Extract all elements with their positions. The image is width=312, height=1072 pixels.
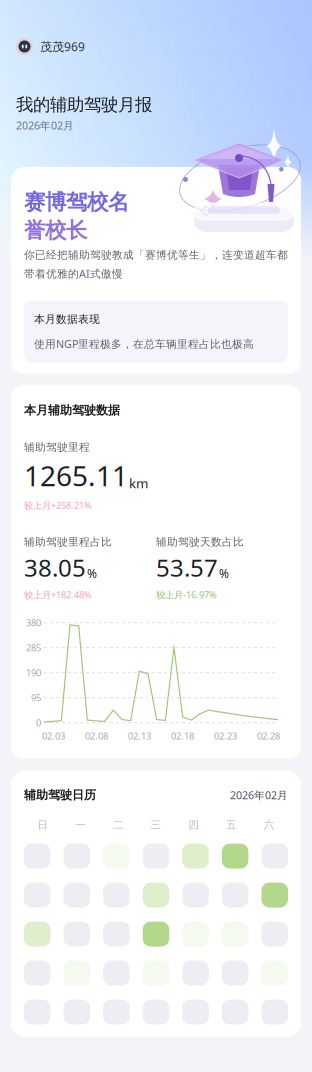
staticText: 02.03	[42, 730, 65, 742]
staticText: 你已经把辅助驾驶教成「赛博优等生」，连变道超车都带着优雅的AI式傲慢	[24, 248, 288, 281]
staticText: 二	[113, 818, 124, 832]
staticText: 辅助驾驶天数占比	[156, 535, 244, 548]
staticText: 三	[150, 818, 161, 832]
staticText: 02.08	[85, 730, 108, 742]
staticText: 本月辅助驾驶数据	[24, 403, 120, 418]
staticText: %	[87, 565, 97, 581]
staticText: 285	[26, 641, 41, 654]
staticText: 02.23	[214, 730, 237, 742]
staticText: 190	[26, 666, 41, 679]
staticText: 辅助驾驶里程	[24, 441, 90, 454]
staticText: 02.18	[171, 730, 194, 742]
staticText: %	[219, 565, 229, 581]
button[interactable]: 茂茂969	[16, 38, 85, 55]
staticText: 53.57	[156, 551, 218, 583]
staticText: 380	[26, 616, 41, 629]
staticText: 02.28	[257, 730, 280, 742]
staticText: 95	[31, 691, 41, 704]
staticText: 使用NGP里程极多，在总车辆里程占比也极高	[34, 337, 254, 351]
staticText: 2026年02月	[16, 118, 74, 132]
staticText: 辅助驾驶里程占比	[24, 535, 112, 548]
staticText: 0	[36, 716, 41, 729]
staticText: 辅助驾驶日历	[24, 788, 96, 802]
staticText: 茂茂969	[40, 38, 85, 54]
staticText: km	[129, 474, 148, 492]
staticText: 38.05	[24, 551, 86, 583]
staticText: 较上月-16.97%	[156, 588, 217, 601]
staticText: 赛博驾校名	[24, 189, 129, 215]
staticText: 五	[226, 818, 237, 832]
staticText: 六	[264, 818, 275, 832]
staticText: 2026年02月	[230, 788, 288, 802]
staticText: 一	[75, 818, 86, 832]
staticText: 誉校长	[24, 217, 87, 243]
staticText: 我的辅助驾驶月报	[16, 94, 152, 115]
staticText: 日	[37, 818, 48, 832]
staticText: 1265.11	[24, 457, 128, 494]
staticText: 02.13	[128, 730, 151, 742]
staticText: 较上月+258.21%	[24, 499, 92, 511]
staticText: 较上月+182.48%	[24, 588, 92, 601]
staticText: 本月数据表现	[34, 313, 100, 326]
staticText: 四	[188, 818, 199, 832]
